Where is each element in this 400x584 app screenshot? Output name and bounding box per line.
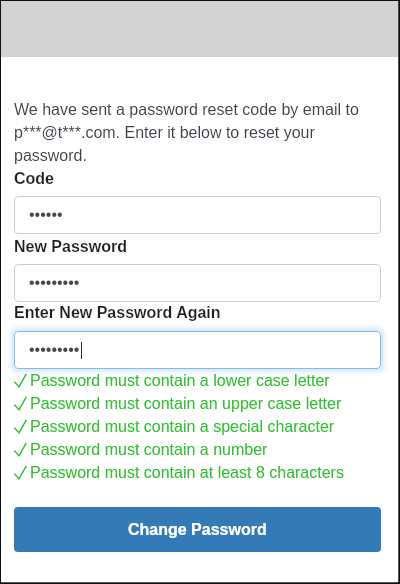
staticText: Password must contain a lower case lette… (30, 372, 330, 390)
staticText: ••••••••• (29, 341, 80, 359)
button[interactable]: ••••••••• (14, 331, 381, 369)
staticText: Change Password (128, 521, 267, 539)
staticText: •••••• (29, 206, 63, 224)
staticText: Code (14, 170, 54, 188)
button[interactable]: Change Password (14, 507, 381, 552)
button[interactable]: ••••••••• (14, 264, 381, 302)
staticText: Password must contain an upper case lett… (30, 395, 342, 413)
staticText: ••••••••• (29, 274, 80, 292)
button[interactable]: •••••• (14, 196, 381, 234)
staticText: Password must contain a special characte… (30, 418, 335, 436)
staticText: Password must contain at least 8 charact… (30, 464, 344, 482)
staticText: We have sent a password reset code by em… (14, 97, 381, 166)
staticText: Password must contain a number (30, 441, 268, 459)
staticText: Enter New Password Again (14, 304, 221, 322)
staticText: New Password (14, 238, 127, 256)
